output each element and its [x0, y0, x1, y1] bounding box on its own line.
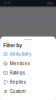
staticText: All Activity: [10, 52, 31, 57]
staticText: Replies: [10, 79, 26, 85]
button[interactable]: Replies: [0, 77, 56, 87]
button[interactable]: All Activity: [0, 50, 56, 59]
button[interactable]: Ratings: [0, 68, 56, 77]
staticText: 9:41: [4, 1, 10, 5]
button[interactable]: Mentions: [0, 59, 56, 68]
staticText: Mentions: [10, 61, 30, 66]
staticText: Custom: [10, 89, 26, 94]
staticText: ▮▮▮: [47, 2, 53, 5]
button[interactable]: Custom: [0, 87, 56, 96]
staticText: Filter by: [3, 43, 22, 48]
staticText: Ratings: [10, 70, 25, 75]
